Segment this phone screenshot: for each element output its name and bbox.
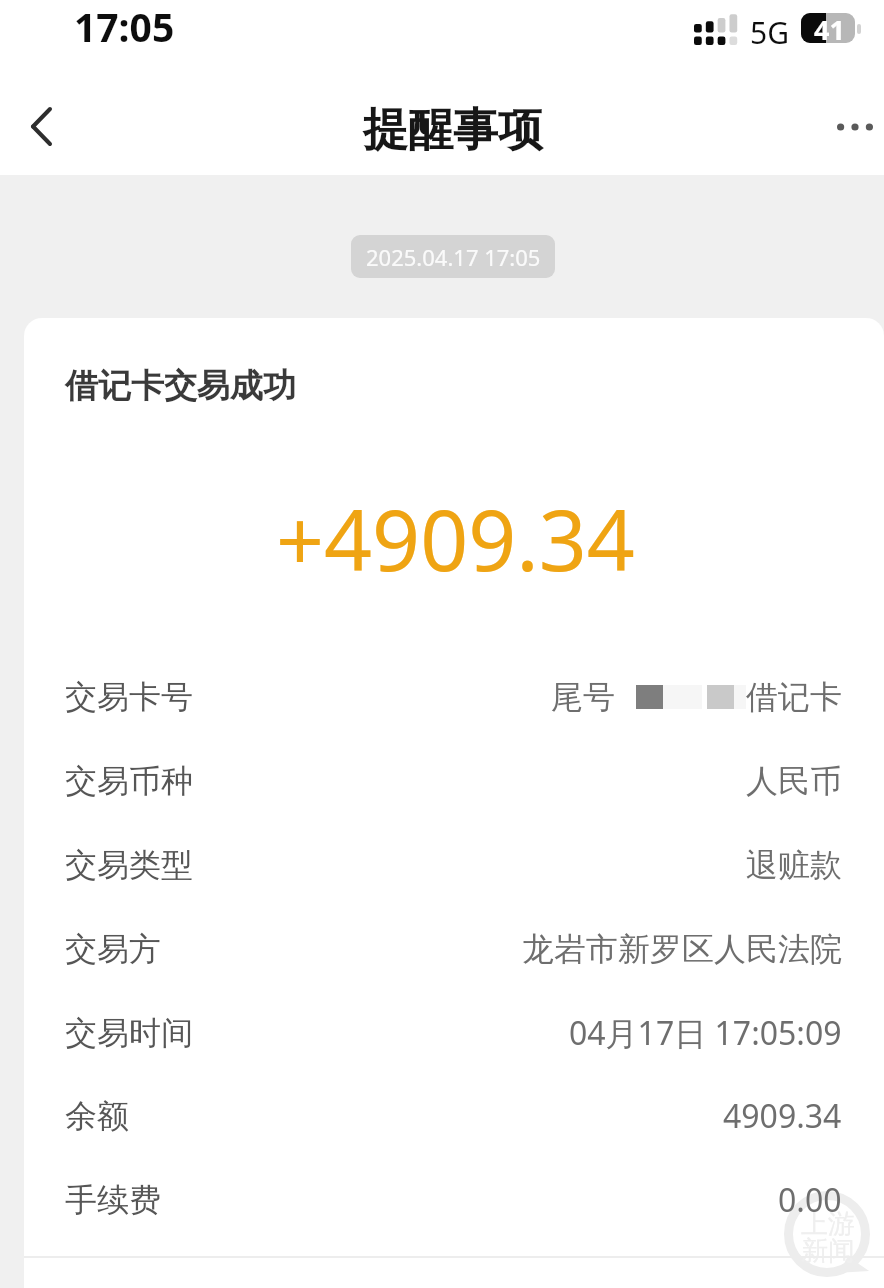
staticText: 尾号 — [551, 677, 615, 717]
staticText: +4909.34 — [276, 481, 635, 595]
button[interactable] — [24, 318, 884, 1288]
staticText: 人民币 — [746, 761, 842, 801]
staticText: 手续费 — [65, 1180, 161, 1220]
staticText: 借记卡交易成功 — [65, 365, 296, 407]
staticText: 退赃款 — [746, 845, 842, 885]
staticText: 新闻 — [801, 1234, 855, 1268]
staticText: 交易币种 — [65, 761, 193, 801]
staticText: 交易时间 — [65, 1013, 193, 1053]
staticText: 2025.04.17 17:05 — [366, 242, 541, 272]
staticText: 5G — [750, 12, 789, 53]
staticText: 0.00 — [778, 1178, 842, 1222]
staticText: 龙岩市新罗区人民法院 — [522, 929, 842, 969]
staticText: 交易卡号 — [65, 677, 193, 717]
staticText: 上游 — [801, 1207, 855, 1241]
staticText: 交易类型 — [65, 845, 193, 885]
button[interactable]: More options — [819, 91, 884, 163]
staticText: 余额 — [65, 1096, 129, 1136]
staticText: 17:05 — [74, 0, 175, 53]
staticText: 04月17日 17:05:09 — [569, 1011, 842, 1055]
staticText: 交易方 — [65, 929, 161, 969]
staticText: 借记卡 — [746, 677, 842, 717]
staticText: 41 — [814, 11, 845, 42]
staticText: 提醒事项 — [363, 102, 543, 159]
staticText: 4909.34 — [723, 1094, 842, 1138]
button[interactable]: Back — [0, 84, 83, 168]
